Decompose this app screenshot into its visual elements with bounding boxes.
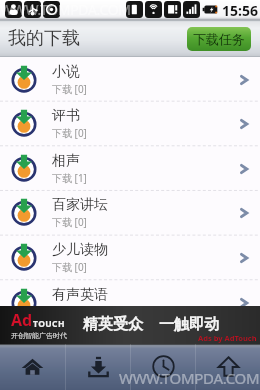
staticText: 下载 [0] bbox=[52, 215, 87, 229]
staticText: 少儿读物 bbox=[52, 241, 108, 259]
staticText: 下载 [1] bbox=[52, 171, 87, 185]
staticText: 相声 bbox=[52, 152, 80, 170]
button[interactable]: Upload bbox=[196, 344, 260, 390]
button[interactable]: Downloads bbox=[66, 344, 130, 390]
staticText: 下载 [0] bbox=[52, 305, 87, 319]
staticText: 精英受众 bbox=[83, 315, 143, 334]
button[interactable]: 评书 bbox=[0, 101, 260, 146]
staticText: 我的下载 bbox=[8, 27, 80, 50]
staticText: WWW.TOMPDA.COM bbox=[119, 368, 260, 388]
staticText: 一触即动 bbox=[159, 315, 219, 334]
button[interactable]: 下载任务 bbox=[187, 27, 251, 51]
staticText: WWW.TOMPDA.COM bbox=[0, 0, 131, 19]
staticText: 百家讲坛 bbox=[52, 196, 108, 214]
staticText: 下载 [0] bbox=[52, 82, 87, 96]
button[interactable]: 百家讲坛 bbox=[0, 190, 260, 235]
staticText: 15:56 bbox=[222, 1, 258, 20]
staticText: 评书 bbox=[52, 107, 80, 125]
staticText: 下载 [0] bbox=[52, 126, 87, 140]
button[interactable]: History bbox=[131, 344, 195, 390]
button[interactable]: Ad bbox=[0, 306, 260, 344]
button[interactable]: 小说 bbox=[0, 57, 260, 102]
button[interactable]: 少儿读物 bbox=[0, 235, 260, 280]
staticText: 开创智能广告时代 bbox=[11, 331, 67, 340]
button[interactable]: 有声英语 bbox=[0, 280, 260, 325]
staticText: Ads by AdTouch bbox=[198, 333, 257, 343]
button[interactable]: Home bbox=[0, 344, 65, 390]
staticText: Ad bbox=[11, 309, 33, 331]
staticText: 小说 bbox=[52, 63, 80, 81]
staticText: 有声英语 bbox=[52, 286, 108, 304]
staticText: 下载 [0] bbox=[52, 260, 87, 274]
staticText: TOUCH bbox=[33, 318, 65, 330]
staticText: 下载任务 bbox=[193, 31, 245, 47]
button[interactable]: 相声 bbox=[0, 146, 260, 191]
